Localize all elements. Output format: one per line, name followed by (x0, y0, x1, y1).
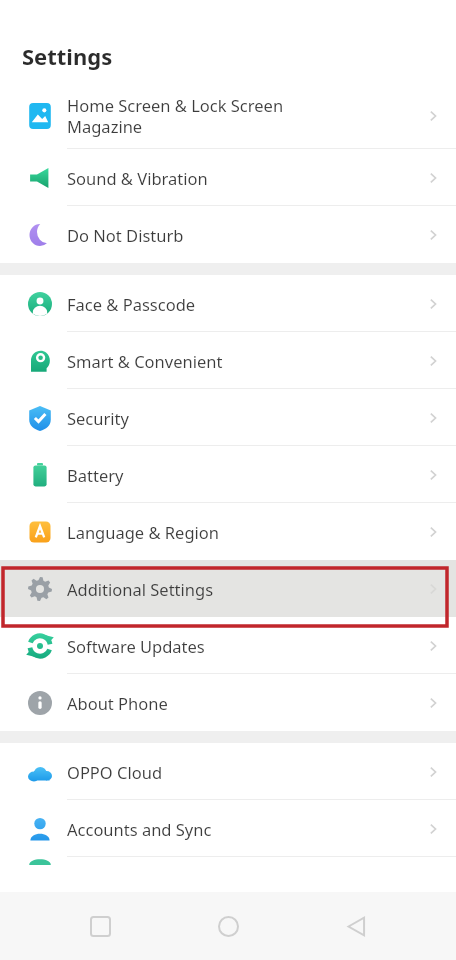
staticText: Additional Settings (67, 578, 424, 600)
button[interactable]: Battery (0, 446, 456, 503)
staticText: Home Screen & Lock Screen Magazine (67, 94, 424, 138)
staticText: OPPO Cloud (67, 761, 424, 783)
button[interactable]: Home (200, 898, 256, 954)
button[interactable]: Smart & Convenient (0, 332, 456, 389)
button[interactable]: Face & Passcode (0, 275, 456, 332)
staticText: Sound & Vibration (67, 167, 424, 189)
staticText: Face & Passcode (67, 293, 424, 315)
staticText: Security (67, 407, 424, 429)
staticText: Language & Region (67, 521, 424, 543)
button[interactable] (0, 857, 456, 892)
staticText: Software Updates (67, 635, 424, 657)
staticText: Do Not Disturb (67, 224, 424, 246)
button[interactable]: Software Updates (0, 617, 456, 674)
button[interactable]: Additional Settings (0, 560, 456, 617)
button[interactable]: Language & Region (0, 503, 456, 560)
button[interactable]: Security (0, 389, 456, 446)
staticText: Settings (22, 41, 113, 71)
staticText: Accounts and Sync (67, 818, 424, 840)
button[interactable]: Accounts and Sync (0, 800, 456, 857)
button[interactable]: Do Not Disturb (0, 206, 456, 263)
button[interactable]: Recent apps (72, 898, 128, 954)
button[interactable]: About Phone (0, 674, 456, 731)
staticText: Smart & Convenient (67, 350, 424, 372)
button[interactable]: Back (328, 898, 384, 954)
button[interactable]: Sound & Vibration (0, 149, 456, 206)
staticText: About Phone (67, 692, 424, 714)
button[interactable]: Home Screen & Lock Screen Magazine (0, 82, 456, 149)
staticText: Battery (67, 464, 424, 486)
button[interactable]: OPPO Cloud (0, 743, 456, 800)
